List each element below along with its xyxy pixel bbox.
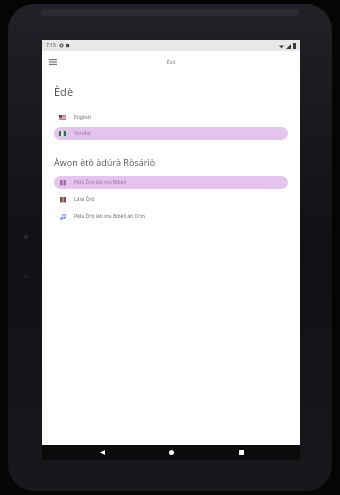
button[interactable]: Open navigation menu [46,55,60,69]
button[interactable]: Láìsí Ọ̀rọ̀ [54,193,288,206]
button[interactable]: English [54,111,288,124]
staticText: Pẹ̀lú Ọ̀rọ̀ láti inú Bíbélì àti Orin [74,213,145,220]
staticText: Pẹ̀lú Ọ̀rọ̀ láti inú Bíbélì [74,179,126,186]
staticText: 7:15 [46,42,56,49]
button[interactable]: Recent apps [231,445,251,460]
button[interactable]: Pẹ̀lú Ọ̀rọ̀ láti inú Bíbélì [54,176,288,189]
button[interactable]: Home [161,445,181,460]
button[interactable]: Pẹ̀lú Ọ̀rọ̀ láti inú Bíbélì àti Orin [54,210,288,223]
staticText: Èsó [166,58,176,65]
staticText: Láìsí Ọ̀rọ̀ [74,196,95,203]
staticText: English [74,114,92,121]
button[interactable]: Back [92,445,112,460]
staticText: Èdè [54,84,74,99]
staticText: Àwọn ètò àdúrà Ròsárìò [54,156,156,168]
button[interactable]: Yorùbá [54,127,288,140]
staticText: Yorùbá [74,130,91,137]
